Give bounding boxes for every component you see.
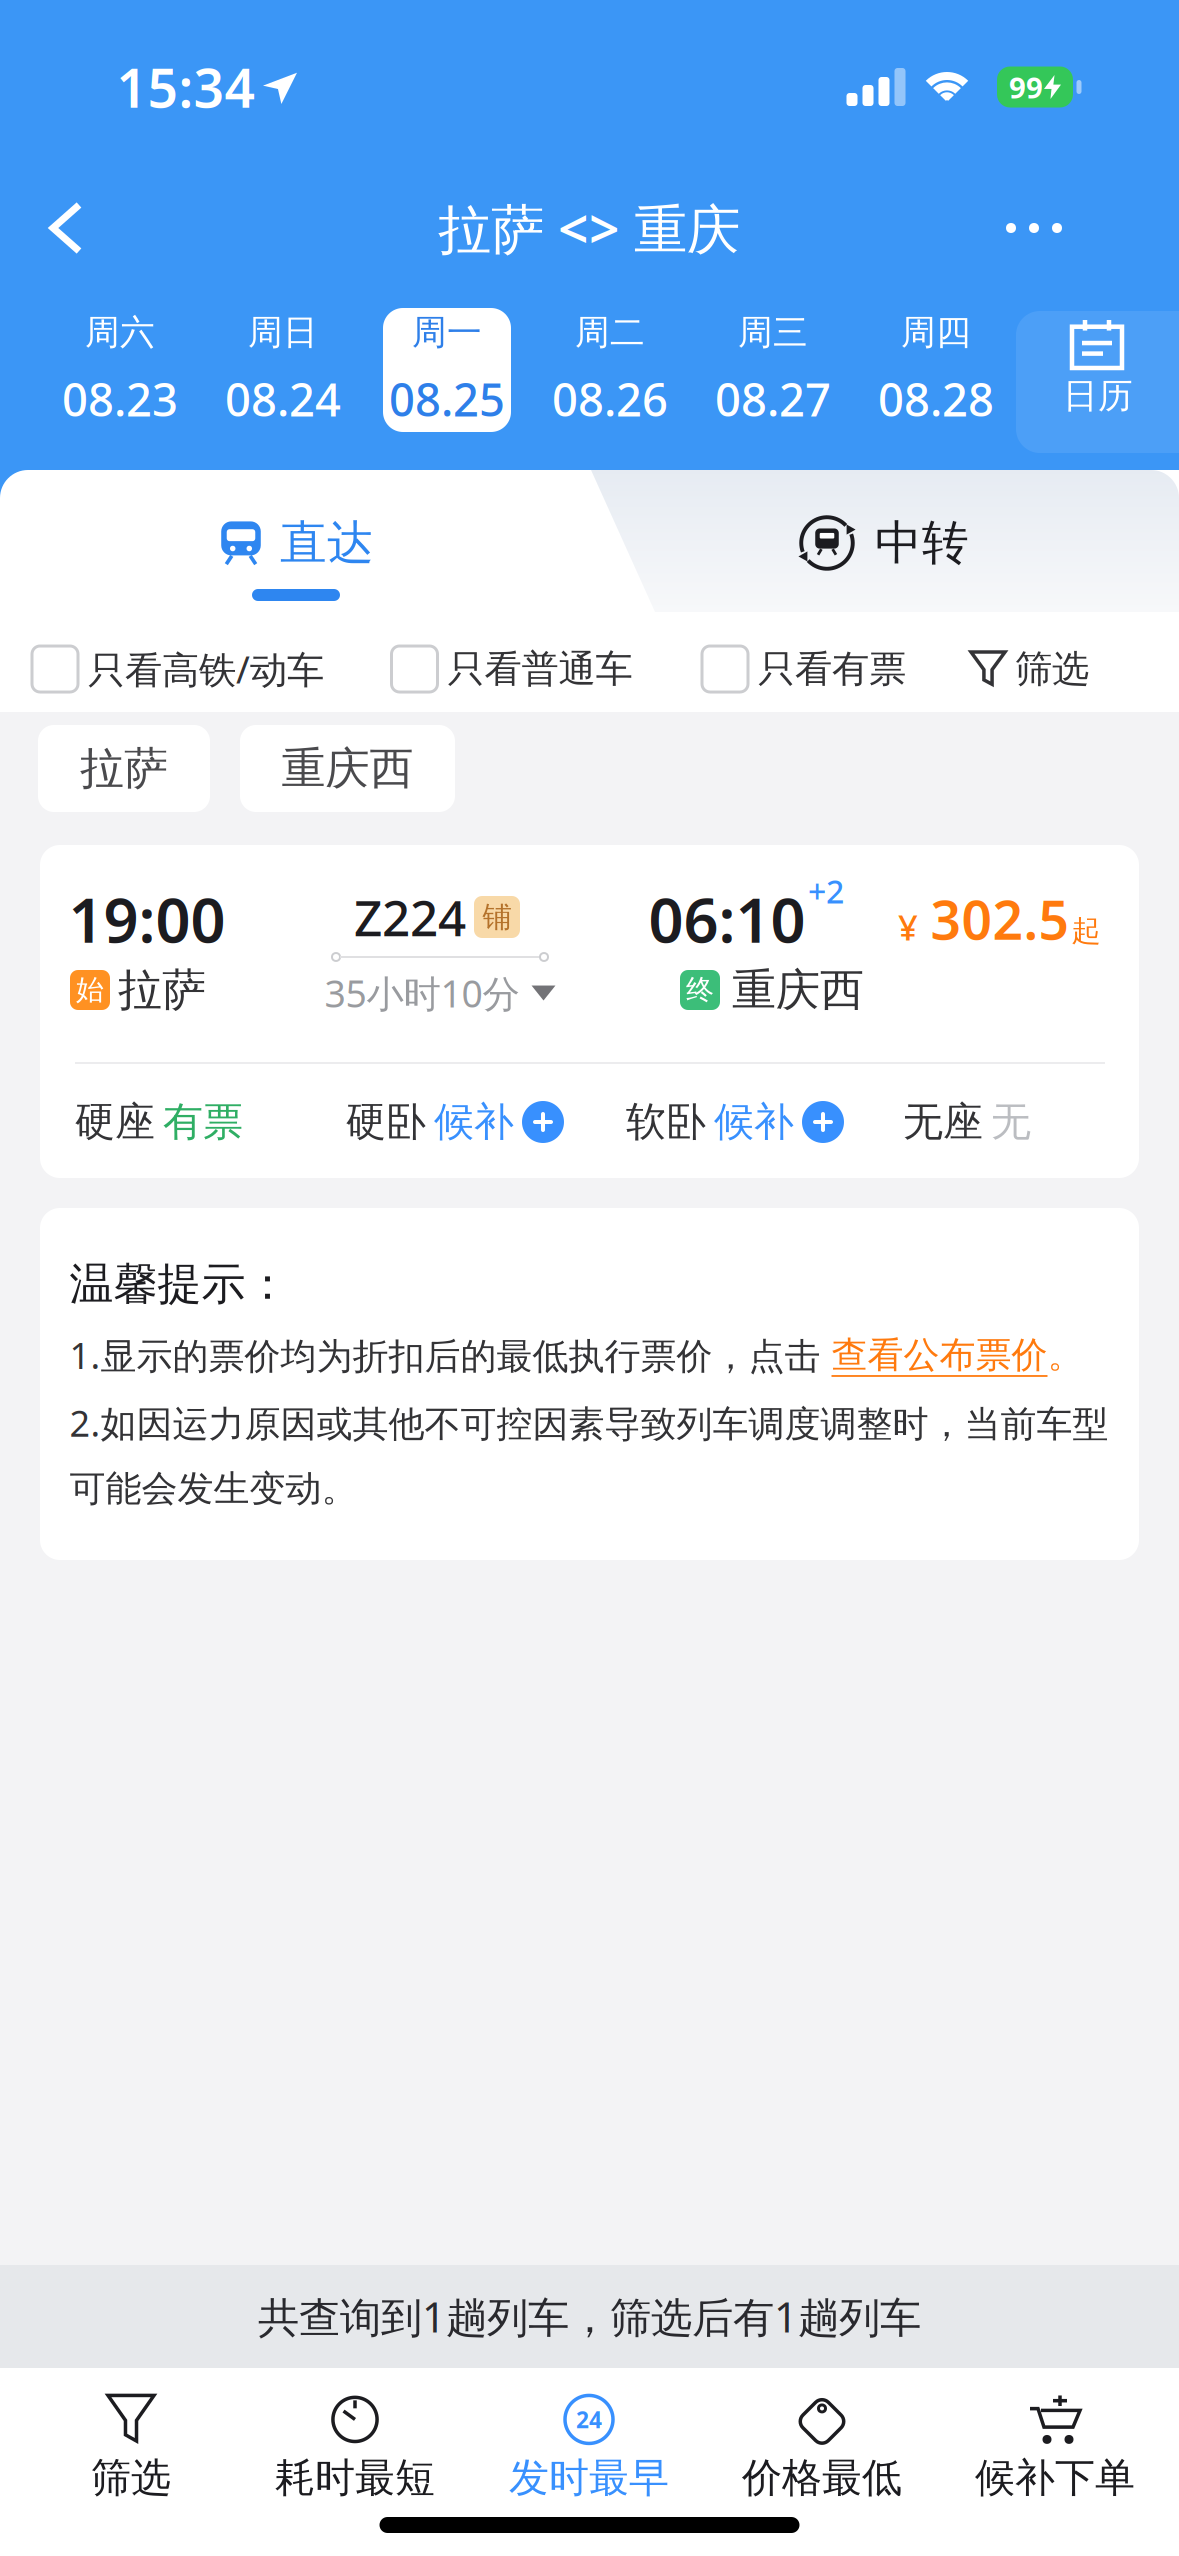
- staticText: 2.如因运力原因或其他不可控因素导致列车调度调整时，当前车型: [69, 1399, 1108, 1447]
- staticText: 终: [686, 973, 714, 1007]
- button[interactable]: 日历: [1016, 311, 1179, 453]
- button[interactable]: 重庆西: [240, 725, 455, 812]
- staticText: 24: [576, 2404, 602, 2434]
- staticText: 始: [76, 973, 104, 1007]
- staticText: 。: [1047, 1333, 1083, 1377]
- staticText: 只看普通车: [447, 646, 632, 692]
- staticText: 06:10: [648, 878, 805, 960]
- staticText: 查看公布票价: [831, 1333, 1047, 1377]
- staticText: 08.27: [715, 369, 831, 429]
- button[interactable]: 周四: [872, 308, 1000, 432]
- staticText: 耗时最短: [275, 2453, 435, 2502]
- staticText: 周四: [901, 311, 971, 354]
- staticText: 08.25: [389, 369, 505, 429]
- staticText: 99: [1009, 67, 1043, 106]
- staticText: 硬卧: [346, 1097, 426, 1146]
- button[interactable]: 拉萨: [38, 725, 210, 812]
- staticText: 软卧: [626, 1097, 706, 1146]
- button[interactable]: 筛选: [971, 646, 1089, 692]
- staticText: 无: [991, 1097, 1031, 1146]
- button[interactable]: 只看高铁/动车: [32, 644, 324, 694]
- button[interactable]: 价格最低: [742, 2393, 902, 2502]
- staticText: 筛选: [1015, 646, 1089, 692]
- button[interactable]: 周二: [546, 308, 674, 432]
- staticText: ¥: [898, 904, 918, 950]
- button[interactable]: Back: [53, 205, 79, 251]
- button[interactable]: 周三: [709, 308, 837, 432]
- button[interactable]: 查看公布票价: [831, 1333, 1047, 1377]
- button[interactable]: 周一: [383, 308, 511, 432]
- staticText: 15:34: [116, 52, 255, 122]
- staticText: 周一: [412, 311, 482, 354]
- button[interactable]: 候补硬卧: [522, 1101, 564, 1143]
- button[interactable]: 只看普通车: [391, 646, 632, 692]
- staticText: 硬座: [75, 1097, 155, 1146]
- staticText: 周日: [248, 311, 318, 354]
- staticText: 直达: [280, 514, 374, 572]
- staticText: 19:00: [68, 878, 225, 960]
- staticText: 中转: [875, 514, 969, 572]
- staticText: 周二: [575, 311, 645, 354]
- button[interactable]: 候补软卧: [802, 1101, 844, 1143]
- staticText: 只看有票: [758, 646, 906, 692]
- staticText: 08.24: [225, 369, 341, 429]
- staticText: 拉萨: [80, 741, 168, 795]
- staticText: 筛选: [91, 2453, 171, 2502]
- staticText: 只看高铁/动车: [88, 644, 324, 694]
- staticText: 候补: [434, 1097, 514, 1146]
- staticText: 拉萨: [118, 963, 206, 1017]
- button[interactable]: 候补下单: [975, 2393, 1135, 2502]
- staticText: 08.28: [878, 369, 994, 429]
- button[interactable]: 筛选: [91, 2393, 171, 2502]
- staticText: 08.23: [62, 369, 178, 429]
- staticText: 重庆西: [281, 741, 413, 795]
- staticText: 起: [1071, 913, 1100, 949]
- button[interactable]: 周六: [56, 308, 184, 432]
- staticText: 铺: [482, 899, 511, 935]
- staticText: 302.5: [930, 884, 1069, 954]
- staticText: 无座: [903, 1097, 983, 1146]
- staticText: 价格最低: [742, 2453, 902, 2502]
- staticText: 共查询到1趟列车，筛选后有1趟列车: [258, 2289, 921, 2344]
- button[interactable]: 周日: [219, 308, 347, 432]
- staticText: 温馨提示：: [69, 1257, 289, 1311]
- button[interactable]: 直达: [218, 514, 374, 572]
- staticText: 1.显示的票价均为折扣后的最低执行票价，点击: [69, 1331, 831, 1379]
- staticText: +2: [808, 870, 844, 912]
- button[interactable]: 19:00: [40, 845, 1139, 1178]
- staticText: 日历: [1063, 375, 1133, 417]
- staticText: 周六: [85, 311, 155, 354]
- staticText: 35小时10分: [324, 968, 519, 1018]
- staticText: Z224: [354, 884, 466, 950]
- staticText: 可能会发生变动。: [69, 1467, 357, 1511]
- staticText: 拉萨 <> 重庆: [438, 193, 740, 263]
- staticText: 发时最早: [509, 2453, 669, 2502]
- button[interactable]: 24: [509, 2393, 669, 2502]
- staticText: 有票: [163, 1097, 243, 1146]
- staticText: 重庆西: [732, 963, 864, 1017]
- staticText: 候补下单: [975, 2453, 1135, 2502]
- staticText: 周三: [738, 311, 808, 354]
- button[interactable]: 只看有票: [702, 646, 906, 692]
- button[interactable]: 耗时最短: [275, 2393, 435, 2502]
- button[interactable]: 中转: [799, 514, 969, 572]
- staticText: 候补: [714, 1097, 794, 1146]
- staticText: 08.26: [552, 369, 668, 429]
- button[interactable]: More: [1006, 223, 1062, 233]
